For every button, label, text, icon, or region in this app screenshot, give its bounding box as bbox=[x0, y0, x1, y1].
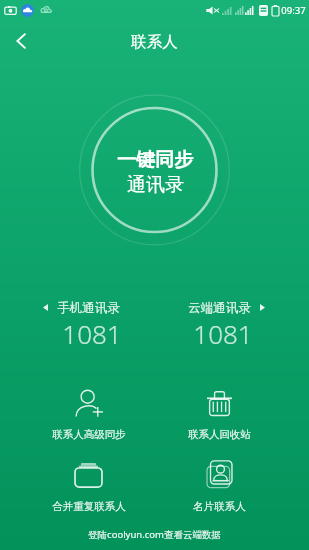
staticText: 联系人高级同步 bbox=[52, 428, 126, 441]
button[interactable]: 名片联系人 bbox=[154, 457, 285, 516]
button[interactable]: 云端通讯录 bbox=[154, 295, 285, 343]
staticText: 09:37 bbox=[281, 4, 306, 17]
staticText: 手机通讯录 bbox=[57, 300, 120, 316]
staticText: 1081 bbox=[193, 316, 253, 351]
button[interactable]: 联系人高级同步 bbox=[23, 385, 154, 444]
staticText: 一键同步 bbox=[117, 148, 193, 172]
button[interactable]: 手机通讯录 bbox=[23, 295, 154, 343]
staticText: 合并重复联系人 bbox=[52, 500, 126, 513]
button[interactable]: 合并重复联系人 bbox=[23, 457, 154, 516]
staticText: 通讯录 bbox=[127, 173, 184, 197]
staticText: 登陆coolyun.com查看云端数据 bbox=[88, 528, 221, 541]
staticText: 联系人 bbox=[131, 32, 178, 52]
staticText: 联系人回收站 bbox=[188, 428, 251, 441]
staticText: 1081 bbox=[62, 316, 122, 351]
staticText: 名片联系人 bbox=[193, 500, 246, 513]
button[interactable]: 一键同步 bbox=[93, 110, 217, 234]
button[interactable]: Back bbox=[1, 21, 41, 61]
button[interactable]: 联系人回收站 bbox=[154, 385, 285, 444]
staticText: 云端通讯录 bbox=[188, 300, 251, 316]
